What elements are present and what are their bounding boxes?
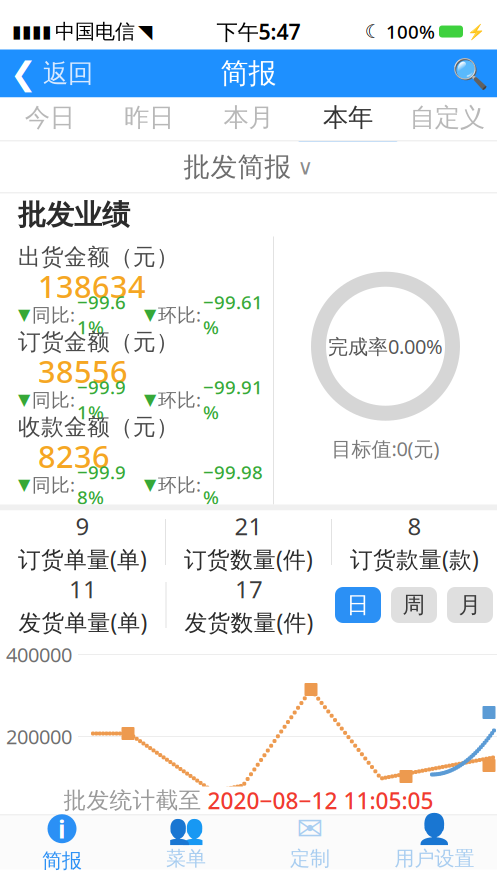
staticText: ∨	[297, 155, 313, 179]
staticText: 自定义	[410, 102, 485, 133]
staticText: −99.98%	[77, 460, 126, 509]
staticText: 日	[346, 591, 369, 619]
button[interactable]: 搜索	[443, 49, 497, 97]
staticText: 9	[75, 510, 89, 542]
staticText: 月	[458, 591, 481, 619]
staticText: 👤	[416, 812, 453, 845]
button[interactable]: i	[0, 815, 124, 869]
staticText: 周	[402, 591, 425, 619]
staticText: −99.61%	[77, 290, 126, 339]
staticText: 中国电信	[55, 19, 135, 44]
button[interactable]: 本月	[199, 97, 298, 140]
button[interactable]: ❮	[0, 49, 93, 97]
staticText: 200000	[6, 723, 72, 750]
staticText: 本月	[223, 102, 273, 133]
staticText: 订货数量(件)	[184, 544, 313, 574]
button[interactable]: 👤	[372, 815, 497, 869]
staticText: ▼	[18, 475, 30, 494]
staticText: 今日	[25, 102, 75, 133]
button[interactable]: 自定义	[398, 97, 497, 140]
staticText: ▼	[144, 390, 156, 409]
staticText: ▼	[144, 475, 156, 494]
staticText: 环比:	[158, 472, 201, 497]
staticText: 🔍	[451, 57, 488, 90]
staticText: 38556	[38, 351, 128, 391]
staticText: ❮	[10, 55, 37, 92]
staticText: 用户设置	[394, 846, 474, 871]
staticText: ▼	[18, 390, 30, 409]
staticText: 环比:	[158, 302, 201, 327]
staticText: −99.98%	[203, 460, 263, 509]
staticText: 返回	[43, 58, 93, 89]
staticText: 11	[69, 573, 97, 605]
staticText: 400000	[6, 641, 72, 668]
staticText: 订货金额（元）	[18, 328, 179, 356]
staticText: 138634	[38, 266, 146, 306]
staticText: 同比:	[32, 302, 75, 327]
staticText: −99.61%	[203, 290, 263, 339]
staticText: 👥	[167, 812, 204, 845]
staticText: 昨日	[124, 102, 174, 133]
staticText: 发货数量(件)	[184, 607, 313, 637]
staticText: 本年	[323, 102, 373, 133]
staticText: 同比:	[32, 472, 75, 497]
staticText: −99.91%	[203, 375, 263, 424]
staticText: 定制	[290, 846, 330, 871]
staticText: 环比:	[158, 387, 201, 412]
staticText: 8236	[38, 436, 110, 476]
staticText: 17	[235, 573, 263, 605]
staticText: 完成率0.00%	[328, 333, 443, 359]
staticText: 订货单量(单)	[18, 544, 147, 574]
staticText: 发货单量(单)	[18, 607, 147, 637]
staticText: 2020−08−12 11:05:05	[207, 785, 433, 815]
staticText: 订货款量(款)	[350, 544, 479, 574]
staticText: ▮▮▮▮	[12, 22, 52, 41]
button[interactable]: ✉	[248, 815, 372, 869]
staticText: 8	[407, 510, 421, 542]
staticText: i	[58, 812, 66, 845]
staticText: 出货金额（元）	[18, 243, 179, 271]
staticText: 收款金额（元）	[18, 413, 179, 441]
staticText: 简报	[220, 56, 276, 91]
button[interactable]: 批发简报	[0, 141, 497, 192]
button[interactable]: 本年	[298, 97, 398, 140]
staticText: ⚡	[467, 23, 485, 40]
button[interactable]: 昨日	[99, 97, 199, 140]
button[interactable]: 月	[447, 587, 493, 623]
staticText: 同比:	[32, 387, 75, 412]
staticText: ▼	[144, 305, 156, 324]
button[interactable]: 周	[391, 587, 437, 623]
button[interactable]: 👥	[124, 815, 248, 869]
staticText: 100%	[386, 19, 435, 44]
button[interactable]: 日	[335, 587, 381, 623]
staticText: ◥	[138, 21, 152, 42]
staticText: 目标值:0(元)	[331, 435, 439, 462]
staticText: 菜单	[166, 846, 206, 871]
button[interactable]: 今日	[0, 97, 99, 140]
staticText: 批发统计截至	[63, 787, 201, 814]
staticText: 批发业绩	[18, 198, 130, 232]
staticText: −99.91%	[77, 375, 126, 424]
staticText: 简报	[42, 848, 82, 873]
staticText: ✉	[296, 811, 323, 847]
staticText: 批发简报	[183, 151, 291, 183]
staticText: 21	[234, 510, 262, 542]
staticText: ☾	[365, 21, 382, 42]
staticText: ▼	[18, 305, 30, 324]
staticText: 下午5:47	[216, 17, 300, 46]
